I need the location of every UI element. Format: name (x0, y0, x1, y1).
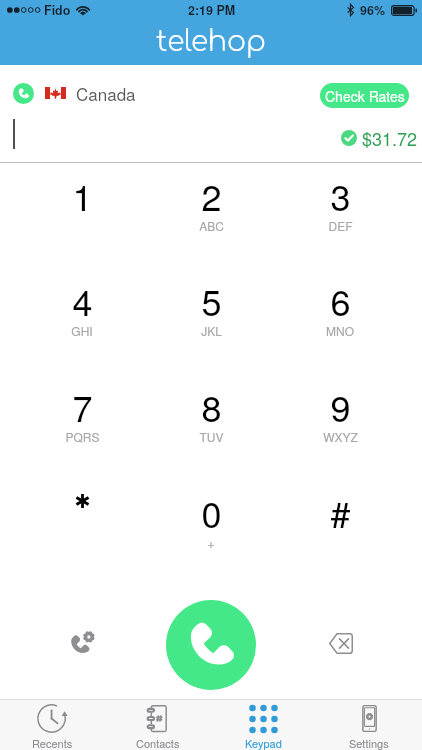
button[interactable]: $31.72 (341, 125, 418, 151)
button[interactable]: Contacts (105, 700, 210, 750)
staticText: # (330, 487, 351, 539)
staticText: Contacts (136, 735, 180, 750)
staticText: 3 (330, 170, 351, 222)
staticText: TUV (199, 428, 224, 445)
button[interactable]: Keypad (210, 700, 316, 750)
staticText: Check Rates (325, 86, 405, 106)
button[interactable]: Check Rates (320, 83, 409, 108)
button[interactable]: 3 (280, 156, 400, 256)
staticText: 1 (72, 170, 93, 222)
staticText: GHI (71, 322, 93, 339)
button[interactable]: Settings (316, 700, 422, 750)
staticText: 0 (201, 487, 222, 539)
button[interactable]: Call (166, 600, 256, 690)
staticText: 96% (360, 1, 386, 19)
staticText: 6 (330, 275, 351, 327)
button[interactable]: Canada (13, 81, 136, 105)
button[interactable]: 0 (151, 473, 271, 573)
staticText: ABC (199, 217, 224, 234)
staticText: Canada (76, 81, 136, 105)
button[interactable]: Call settings (60, 621, 104, 665)
staticText: + (207, 534, 215, 551)
button[interactable]: 6 (280, 261, 400, 361)
staticText: JKL (201, 322, 222, 339)
staticText: Settings (349, 735, 389, 750)
button[interactable]: 7 (22, 367, 142, 467)
staticText: $31.72 (362, 125, 418, 151)
button[interactable] (22, 473, 142, 573)
staticText: 9 (330, 381, 351, 433)
button[interactable]: Delete (318, 621, 362, 665)
button[interactable]: 5 (151, 261, 271, 361)
staticText: Keypad (245, 735, 282, 750)
button[interactable]: Recents (0, 700, 105, 750)
button[interactable]: 2 (151, 156, 271, 256)
staticText: 7 (72, 381, 93, 433)
staticText: MNO (326, 322, 354, 339)
staticText: Recents (32, 735, 73, 750)
staticText: telehop (156, 26, 266, 57)
button[interactable]: 8 (151, 367, 271, 467)
staticText: DEF (328, 217, 353, 234)
staticText: 2:19 PM (188, 1, 236, 19)
staticText: 8 (201, 381, 222, 433)
staticText: 4 (72, 275, 93, 327)
staticText: Fido (44, 1, 71, 19)
staticText: 2 (201, 170, 222, 222)
staticText: WXYZ (323, 428, 358, 445)
button[interactable]: 1 (22, 156, 142, 256)
button[interactable]: 9 (280, 367, 400, 467)
staticText: PQRS (65, 428, 100, 445)
button[interactable]: 4 (22, 261, 142, 361)
staticText: 5 (201, 275, 222, 327)
button[interactable]: # (280, 473, 400, 573)
